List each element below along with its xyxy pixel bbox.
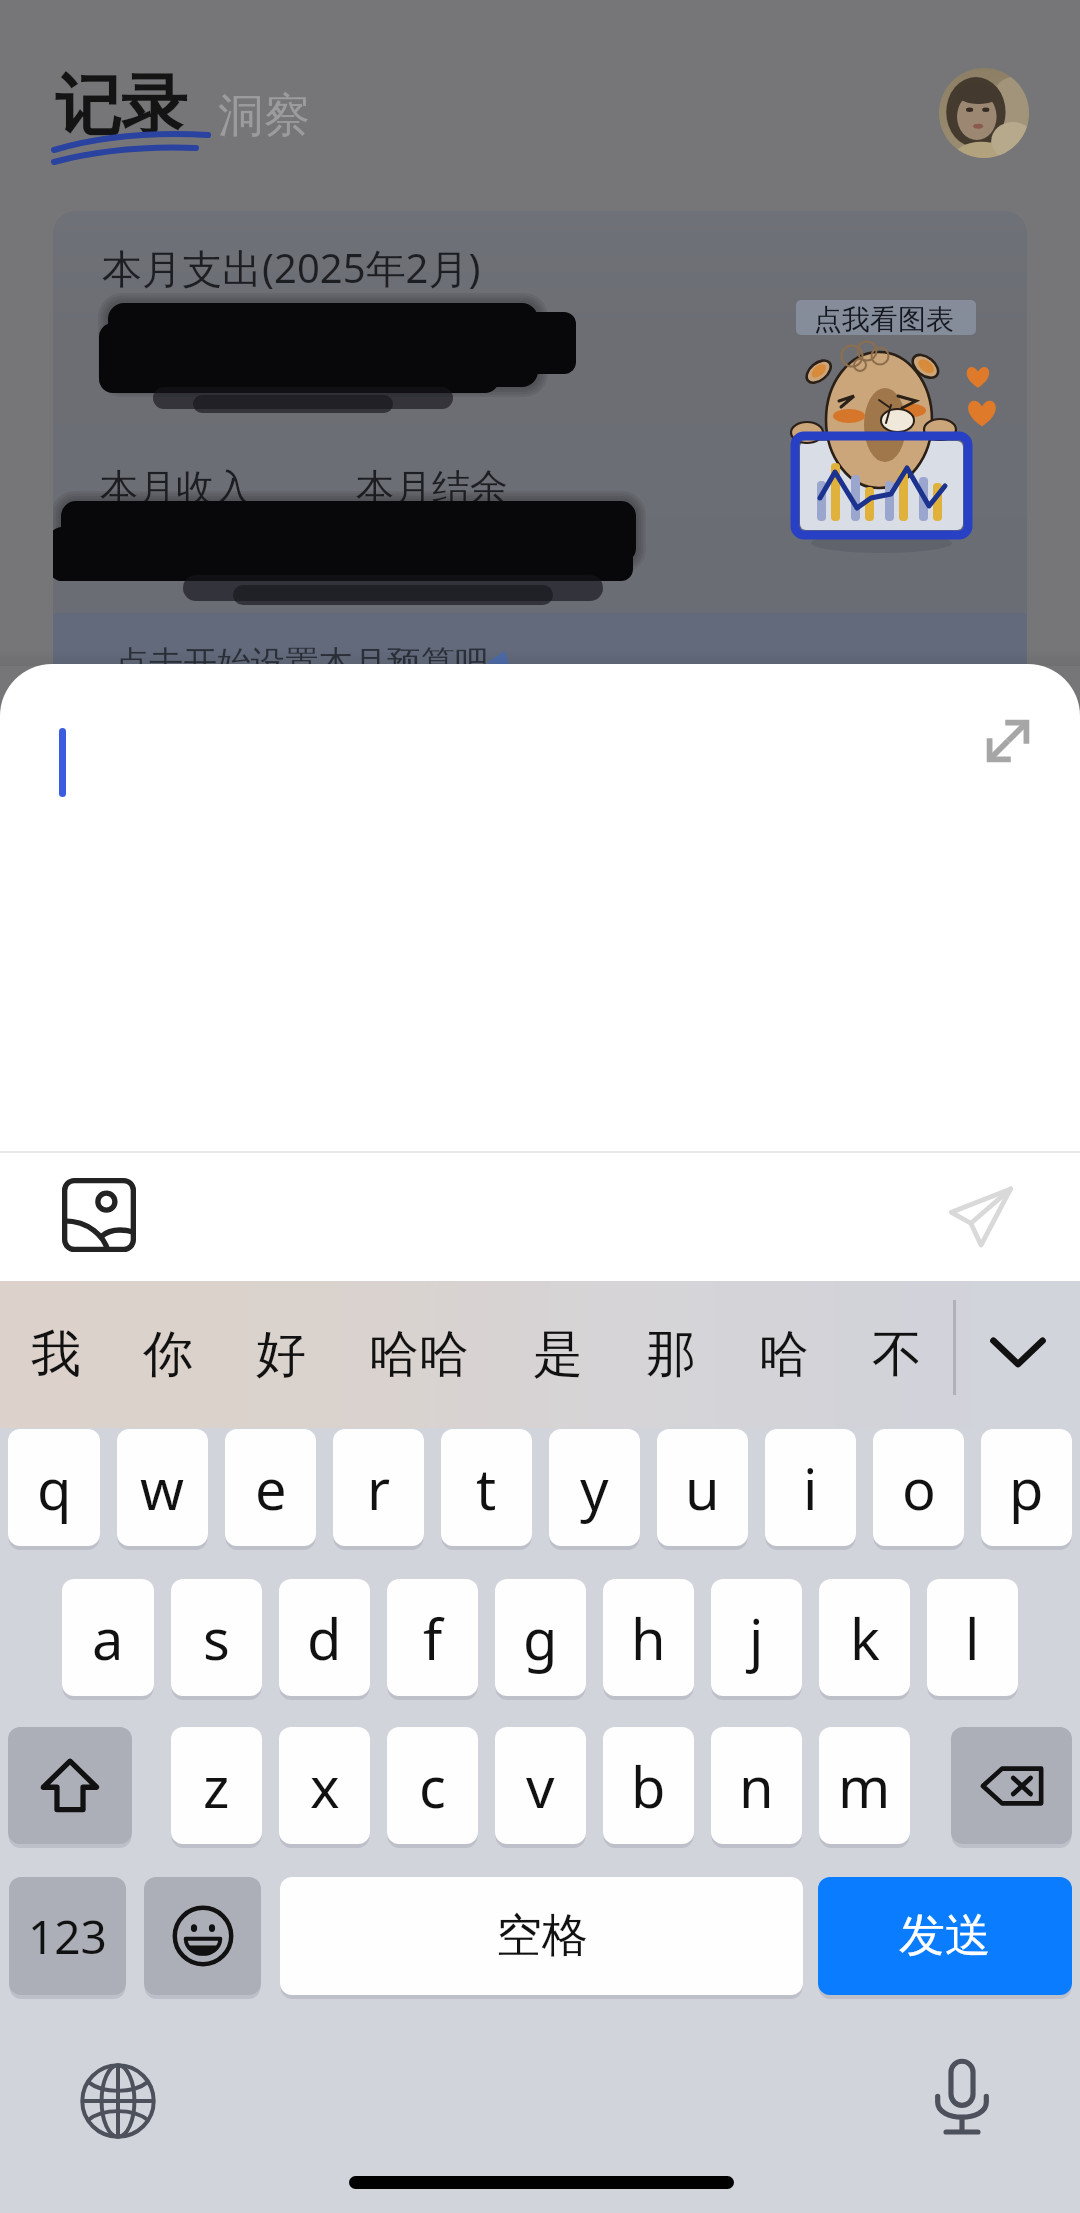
button[interactable]: 洞察	[218, 87, 310, 145]
button[interactable]: 哈	[727, 1281, 840, 1428]
button[interactable]: o	[873, 1429, 964, 1546]
button[interactable]: e	[225, 1429, 316, 1546]
button[interactable]: 123	[9, 1877, 126, 1995]
button[interactable]: c	[387, 1727, 478, 1844]
button[interactable]: p	[981, 1429, 1072, 1546]
button[interactable]: 发送	[818, 1877, 1072, 1995]
staticText: d	[307, 1600, 342, 1676]
button[interactable]: 空格	[280, 1877, 803, 1995]
staticText: q	[37, 1450, 72, 1526]
staticText: 123	[28, 1905, 107, 1968]
staticText: 本月结余	[356, 464, 508, 512]
staticText: 你	[143, 1323, 193, 1386]
staticText: j	[749, 1600, 764, 1676]
button[interactable]: j	[711, 1579, 802, 1696]
button[interactable]: 本月支出(2025年2月)	[53, 211, 1027, 700]
button[interactable]: Emoji	[144, 1877, 261, 1995]
button[interactable]: v	[495, 1727, 586, 1844]
staticText: 哈哈	[369, 1323, 469, 1386]
button[interactable]: q	[8, 1429, 100, 1546]
button[interactable]: y	[549, 1429, 640, 1546]
button[interactable]: 不	[840, 1281, 953, 1428]
button[interactable]: k	[819, 1579, 910, 1696]
staticText: f	[423, 1600, 443, 1676]
button[interactable]: l	[927, 1579, 1018, 1696]
staticText: o	[902, 1450, 936, 1526]
button[interactable]: 是	[501, 1281, 614, 1428]
staticText: 不	[872, 1323, 922, 1386]
staticText: x	[310, 1748, 340, 1824]
staticText: k	[850, 1600, 880, 1676]
staticText: 空格	[496, 1907, 588, 1965]
button[interactable]: 我	[0, 1281, 112, 1428]
staticText: g	[523, 1600, 558, 1676]
button[interactable]: d	[279, 1579, 370, 1696]
staticText: e	[255, 1450, 287, 1526]
button[interactable]: 好	[224, 1281, 337, 1428]
button[interactable]: Shift	[8, 1727, 132, 1844]
staticText: 是	[533, 1323, 583, 1386]
staticText: z	[203, 1748, 230, 1824]
staticText: 点我看图表	[814, 302, 954, 337]
button[interactable]: s	[171, 1579, 262, 1696]
staticText: i	[803, 1450, 818, 1526]
staticText: r	[367, 1450, 391, 1526]
button[interactable]: 记录	[55, 64, 187, 147]
staticText: 我	[31, 1323, 81, 1386]
button[interactable]: Backspace	[951, 1727, 1072, 1844]
button[interactable]: Expand editor	[954, 687, 1062, 795]
button[interactable]: i	[765, 1429, 856, 1546]
staticText: 那	[646, 1323, 696, 1386]
button[interactable]: Change keyboard language	[80, 2063, 156, 2139]
staticText: l	[965, 1600, 980, 1676]
staticText: t	[476, 1450, 497, 1526]
staticText: b	[631, 1748, 666, 1824]
staticText: 点击开始设置本月预算吧	[115, 642, 489, 685]
staticText: 好	[256, 1323, 306, 1386]
staticText: 本月支出(2025年2月)	[102, 240, 481, 295]
button[interactable]: n	[711, 1727, 802, 1844]
staticText: 发送	[899, 1907, 991, 1965]
button[interactable]: g	[495, 1579, 586, 1696]
button[interactable]: z	[171, 1727, 262, 1844]
button[interactable]: u	[657, 1429, 748, 1546]
button[interactable]: Hide keyboard	[968, 1303, 1068, 1403]
button[interactable]: r	[333, 1429, 424, 1546]
button[interactable]: Send message	[922, 1158, 1040, 1276]
button[interactable]: a	[62, 1579, 154, 1696]
button[interactable]: 哈哈	[337, 1281, 501, 1428]
button[interactable]: h	[603, 1579, 694, 1696]
staticText: 洞察	[218, 87, 310, 145]
button[interactable]: 你	[112, 1281, 224, 1428]
button[interactable]: Voice input	[924, 2059, 1000, 2135]
button[interactable]: 那	[614, 1281, 727, 1428]
button[interactable]: b	[603, 1727, 694, 1844]
staticText: c	[419, 1748, 446, 1824]
staticText: 本月收入	[100, 464, 252, 512]
staticText: 哈	[759, 1323, 809, 1386]
staticText: n	[739, 1748, 774, 1824]
button[interactable]: t	[441, 1429, 532, 1546]
staticText: p	[1009, 1450, 1044, 1526]
staticText: y	[580, 1450, 609, 1526]
button[interactable]: x	[279, 1727, 370, 1844]
staticText: h	[631, 1600, 666, 1676]
staticText: 记录	[55, 64, 187, 147]
button[interactable]: f	[387, 1579, 478, 1696]
staticText: a	[92, 1600, 124, 1676]
button[interactable]: Profile	[939, 68, 1029, 158]
staticText: m	[838, 1748, 891, 1824]
button[interactable]: m	[819, 1727, 910, 1844]
staticText: v	[526, 1748, 555, 1824]
button[interactable]: Add image	[40, 1156, 158, 1274]
staticText: s	[203, 1600, 230, 1676]
button[interactable]: w	[117, 1429, 208, 1546]
staticText: w	[140, 1450, 185, 1526]
staticText: u	[685, 1450, 720, 1526]
